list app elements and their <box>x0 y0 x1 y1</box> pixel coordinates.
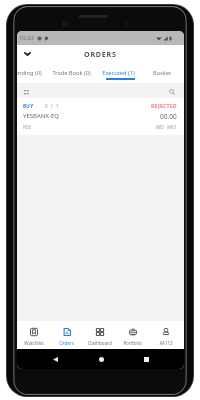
button[interactable]: Search <box>166 86 178 98</box>
button[interactable]: Filter <box>20 86 32 98</box>
staticText: ORDERS <box>84 49 117 59</box>
button[interactable]: Watchlist <box>17 325 50 346</box>
button[interactable]: Recents <box>139 352 153 366</box>
staticText: XA113 <box>159 340 173 346</box>
staticText: Trade Book (0) <box>52 69 91 77</box>
button[interactable]: Back <box>48 352 62 366</box>
button[interactable]: Collapse <box>19 46 35 62</box>
staticText: 00.00 <box>160 112 177 121</box>
staticText: Portfolio <box>123 340 142 346</box>
staticText: 0 / 1 <box>45 103 60 109</box>
staticText: Watchlist <box>24 340 44 346</box>
staticText: MIS MKT <box>156 124 177 130</box>
staticText: NSE <box>23 124 32 130</box>
button[interactable]: XA113 <box>149 325 182 346</box>
button[interactable]: Basket <box>153 66 171 79</box>
staticText: REJECTED <box>151 102 177 109</box>
button[interactable]: Home <box>94 352 108 366</box>
staticText: Executed (1) <box>102 69 135 77</box>
staticText: 10:23 <box>19 34 34 42</box>
button[interactable]: Portfolio <box>116 325 149 346</box>
button[interactable]: Executed (1) <box>102 66 135 79</box>
button[interactable]: Trade Book (0) <box>52 66 91 79</box>
staticText: Basket <box>153 69 171 77</box>
button[interactable]: Pending (0) <box>17 66 42 79</box>
staticText: Pending (0) <box>17 69 42 77</box>
staticText: YESBANK-EQ <box>23 112 59 120</box>
staticText: Orders <box>59 340 74 346</box>
staticText: Dashboard <box>88 340 112 346</box>
staticText: BUY <box>23 103 34 109</box>
button[interactable]: Orders <box>50 325 83 346</box>
button[interactable]: BUY <box>17 98 184 135</box>
button[interactable]: Dashboard <box>83 325 116 346</box>
